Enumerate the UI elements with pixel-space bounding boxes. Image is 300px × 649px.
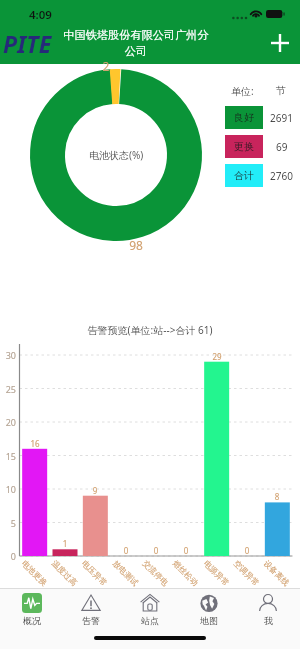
button[interactable]: 站点 <box>123 592 177 626</box>
staticText: 9 <box>85 485 105 496</box>
staticText: 10 <box>1 483 16 495</box>
staticText: 电压异常 <box>80 558 109 588</box>
staticText: 2 <box>100 58 112 74</box>
staticText: 地图 <box>200 615 218 626</box>
staticText: 告警 <box>82 615 100 626</box>
staticText: 空调异常 <box>232 558 261 588</box>
staticText: 15 <box>1 450 16 462</box>
staticText: 0 <box>176 545 196 556</box>
staticText: 0 <box>116 545 136 556</box>
staticText: 1 <box>55 538 75 549</box>
staticText: PITE <box>3 28 52 59</box>
staticText: 我 <box>264 615 273 626</box>
staticText: 29 <box>207 351 227 362</box>
staticText: 站点 <box>141 615 159 626</box>
button[interactable]: 我 <box>241 592 295 626</box>
staticText: 98 <box>127 237 145 253</box>
staticText: 熔丝松动 <box>171 558 200 588</box>
staticText: 更换 <box>234 140 254 153</box>
staticText: 告警预览(单位:站-->合计 61) <box>14 323 286 337</box>
button[interactable]: 告警 <box>64 592 118 626</box>
button[interactable]: 概况 <box>5 592 59 626</box>
staticText: 5 <box>1 517 16 529</box>
staticText: 20 <box>1 416 16 428</box>
staticText: 4:09 <box>29 7 52 23</box>
staticText: 0 <box>146 545 166 556</box>
staticText: 电源异常 <box>202 558 231 588</box>
staticText: 交流停电 <box>141 558 170 588</box>
button[interactable]: Add <box>260 23 300 63</box>
staticText: 电池状态(%) <box>89 148 144 162</box>
staticText: 69 <box>276 140 288 154</box>
staticText: 单位: <box>231 84 254 98</box>
staticText: 设备离线 <box>262 558 291 588</box>
staticText: 16 <box>25 438 45 449</box>
staticText: 中国铁塔股份有限公司广州分公司 <box>60 28 212 58</box>
staticText: 0 <box>1 550 16 562</box>
staticText: 节 <box>276 84 286 97</box>
staticText: 2760 <box>270 169 293 183</box>
staticText: 30 <box>1 349 16 361</box>
staticText: 25 <box>1 383 16 395</box>
staticText: 放电测试 <box>111 558 140 588</box>
button[interactable]: 地图 <box>182 592 236 626</box>
staticText: 概况 <box>23 615 41 626</box>
staticText: 温度过高 <box>50 558 79 588</box>
staticText: 合计 <box>234 169 254 182</box>
staticText: 2691 <box>270 111 293 125</box>
staticText: 0 <box>237 545 257 556</box>
staticText: 电池更换 <box>20 558 49 588</box>
staticText: 8 <box>267 491 287 502</box>
staticText: 良好 <box>234 111 254 124</box>
